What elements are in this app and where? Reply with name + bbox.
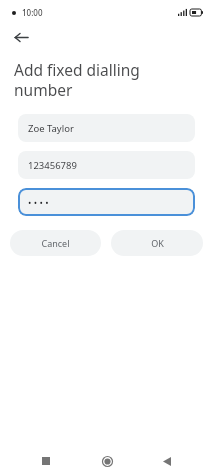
button[interactable]: OK (111, 230, 203, 256)
button[interactable]: Recent apps (31, 448, 61, 474)
button[interactable]: 123456789 (18, 151, 195, 179)
staticText: 123456789 (28, 159, 77, 172)
button[interactable]: Back (8, 24, 34, 50)
staticText: • • • • (28, 196, 49, 208)
button[interactable]: • • • • (18, 188, 195, 216)
staticText: Cancel (41, 237, 70, 249)
button[interactable]: Cancel (10, 230, 101, 256)
staticText: 10:00 (22, 7, 43, 18)
staticText: Zoe Taylor (28, 122, 74, 135)
button[interactable]: Home (92, 448, 122, 474)
staticText: OK (151, 237, 164, 249)
button[interactable]: Back (152, 448, 182, 474)
button[interactable]: Zoe Taylor (18, 114, 195, 142)
staticText: Add fixed dialling number (14, 59, 173, 101)
